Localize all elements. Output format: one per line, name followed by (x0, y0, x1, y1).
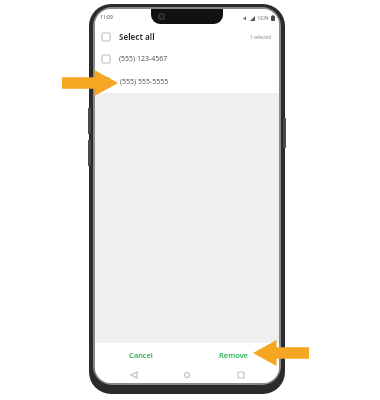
button[interactable]: Recent apps (226, 367, 256, 383)
other: Selected (102, 77, 111, 86)
staticText: Remove (219, 350, 248, 360)
button[interactable]: Select all (95, 26, 279, 47)
button[interactable]: Cancel (95, 343, 187, 367)
staticText: Select all (119, 31, 155, 42)
staticText: 11:09 (100, 14, 113, 21)
staticText: Cancel (129, 350, 153, 360)
button[interactable]: (555) 123-4567 (95, 47, 279, 70)
staticText: 100% (257, 15, 269, 21)
button[interactable]: Back (119, 367, 149, 383)
button[interactable]: Remove (187, 343, 279, 367)
staticText: (555) 555-5555 (120, 77, 169, 87)
staticText: 1 selected (250, 34, 272, 40)
button[interactable]: Selected (95, 70, 279, 93)
button[interactable]: Home (172, 367, 202, 383)
staticText: (555) 123-4567 (119, 54, 168, 64)
